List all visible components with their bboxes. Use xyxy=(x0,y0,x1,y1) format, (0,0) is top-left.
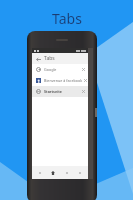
button[interactable]: Back xyxy=(34,55,42,63)
staticText: Tabs xyxy=(44,55,55,62)
staticText: Startseite xyxy=(44,89,63,94)
button[interactable]: Bookmarks xyxy=(61,166,73,179)
button[interactable]: Close tab xyxy=(80,66,87,73)
button[interactable]: Close tab xyxy=(83,77,88,84)
staticText: Google xyxy=(44,67,57,72)
button[interactable]: Close tab xyxy=(80,88,87,95)
button[interactable]: Google xyxy=(32,64,88,75)
button[interactable]: Home xyxy=(47,166,59,179)
button[interactable]: Bienvenue à facebook xyxy=(32,75,88,86)
button[interactable]: More xyxy=(74,166,86,179)
staticText: Bienvenue à facebook xyxy=(44,78,83,83)
staticText: Tabs xyxy=(52,9,82,28)
button[interactable]: Back xyxy=(34,166,46,179)
button[interactable]: Startseite xyxy=(32,86,88,97)
